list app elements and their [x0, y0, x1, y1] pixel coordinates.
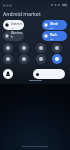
button[interactable]: Toggle	[52, 43, 62, 53]
button[interactable]: Bluetooth	[3, 31, 24, 41]
staticText: Internet	[11, 22, 23, 26]
staticText: On	[11, 26, 15, 29]
button[interactable]: Internet	[3, 20, 24, 30]
button[interactable]: Flash	[42, 31, 67, 41]
button[interactable]: Toggle	[3, 43, 13, 53]
button[interactable]: Brightness	[33, 69, 65, 79]
button[interactable]: Toggle	[36, 43, 46, 53]
staticText: On	[50, 37, 54, 40]
button[interactable]: Silent	[42, 20, 67, 30]
staticText: On	[50, 26, 54, 29]
staticText: Android market	[3, 11, 41, 18]
staticText: Silent	[50, 22, 58, 26]
button[interactable]: Toggle	[52, 54, 62, 64]
button[interactable]: Toggle	[36, 54, 46, 64]
button[interactable]: Toggle	[3, 54, 13, 64]
button[interactable]: Toggle	[19, 43, 29, 53]
staticText: Flash	[50, 33, 57, 37]
staticText: Bluetooth	[11, 31, 24, 39]
button[interactable]: Account	[3, 69, 13, 79]
button[interactable]: Toggle	[19, 54, 29, 64]
